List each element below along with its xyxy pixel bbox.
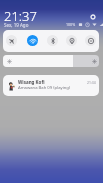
button[interactable]: Wisang Kofi — [3, 75, 99, 96]
staticText: 100% — [66, 22, 76, 27]
staticText: Sex, 19 Ago — [4, 22, 29, 28]
button[interactable]: Do not disturb — [85, 35, 96, 46]
staticText: Amawana Bah 09 (playing) — [18, 85, 71, 91]
button[interactable]: Location — [66, 35, 77, 46]
staticText: Wisang Kofi — [18, 79, 45, 85]
button[interactable]: Airplane mode — [6, 35, 17, 46]
button[interactable]: Wi-Fi — [27, 35, 38, 46]
button[interactable]: Brightness — [3, 55, 99, 67]
staticText: 21:34 — [87, 80, 96, 85]
staticText: 21:37 — [4, 7, 37, 25]
button[interactable]: Settings — [88, 12, 98, 22]
button[interactable]: Bluetooth — [47, 35, 58, 46]
